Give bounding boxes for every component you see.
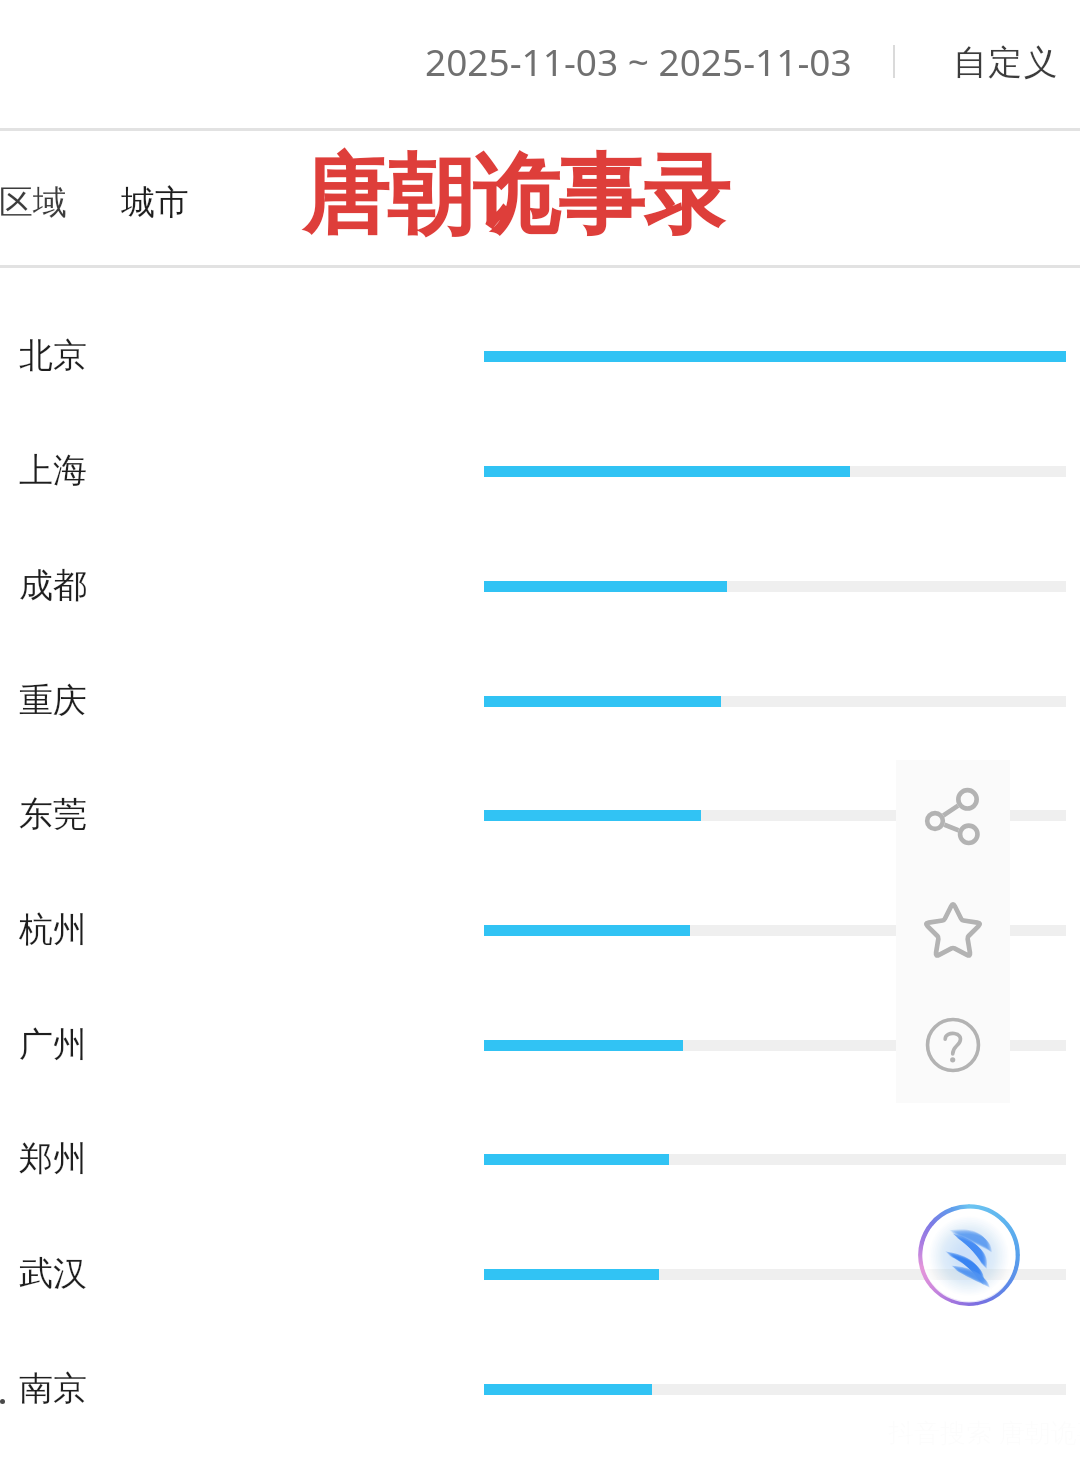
button[interactable]: Assistant (917, 1203, 1021, 1307)
staticText: 城市 (121, 181, 189, 224)
button[interactable]: 自定义 (921, 14, 1069, 104)
button[interactable]: 郑州 (0, 1102, 1080, 1217)
button[interactable]: 区域 (0, 143, 89, 243)
button[interactable]: 2025-11-03 ~ 2025-11-03 (405, 14, 867, 104)
staticText: 南京 (19, 1367, 87, 1410)
staticText: 东莞 (19, 793, 87, 836)
staticText: 上海 (19, 449, 87, 492)
button[interactable]: 广州 (0, 988, 1080, 1103)
staticText: 郑州 (19, 1137, 87, 1180)
staticText: 2025-11-03 ~ 2025-11-03 (425, 36, 852, 86)
button[interactable]: 上海 (0, 414, 1080, 529)
staticText: 自定义 (953, 41, 1059, 84)
button[interactable]: 东莞 (0, 758, 1080, 873)
button[interactable]: Help (896, 988, 1010, 1102)
button[interactable]: Favorite (896, 874, 1010, 988)
button[interactable]: 武汉 (0, 1217, 1080, 1332)
staticText: 重庆 (19, 679, 87, 722)
button[interactable]: 南京 (0, 1332, 1080, 1447)
staticText: 杭州 (19, 908, 87, 951)
button[interactable]: 重庆 (0, 644, 1080, 759)
staticText: 成都 (19, 564, 87, 607)
button[interactable]: Share (896, 760, 1010, 874)
staticText: 武汉 (19, 1252, 87, 1295)
button[interactable]: 杭州 (0, 873, 1080, 988)
button[interactable]: 城市 (97, 143, 211, 243)
staticText: 区域 (0, 181, 67, 224)
button[interactable]: 成都 (0, 529, 1080, 644)
staticText: 广州 (19, 1023, 87, 1066)
staticText: 北京 (19, 334, 87, 377)
button[interactable]: 北京 (0, 299, 1080, 414)
staticText: 唐朝诡事录 (303, 141, 729, 251)
